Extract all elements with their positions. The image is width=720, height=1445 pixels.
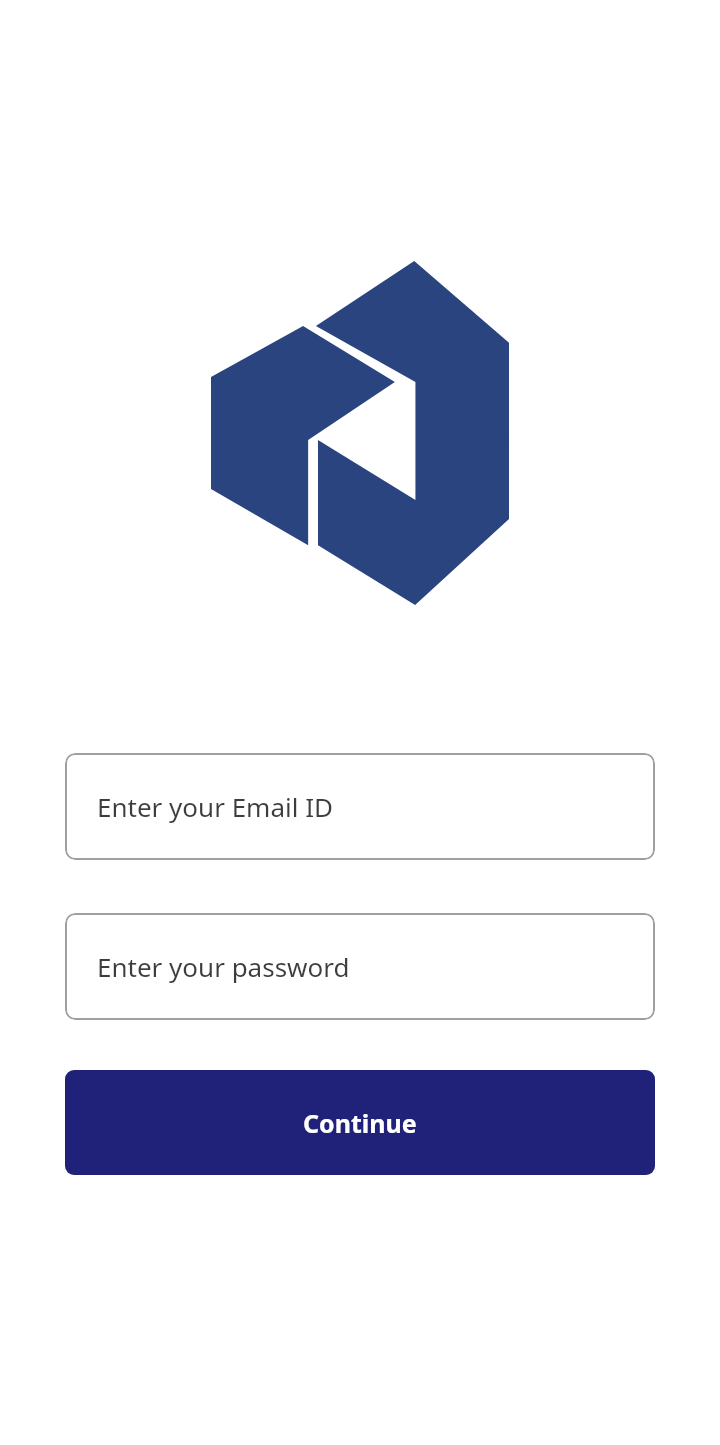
other: App logo	[211, 261, 509, 605]
staticText: Enter your Email ID	[97, 789, 333, 824]
staticText: Enter your password	[97, 949, 350, 984]
button[interactable]: Continue	[65, 1070, 655, 1175]
button[interactable]: Enter your password	[65, 913, 655, 1020]
staticText: Continue	[303, 1106, 417, 1140]
button[interactable]: Enter your Email ID	[65, 753, 655, 860]
